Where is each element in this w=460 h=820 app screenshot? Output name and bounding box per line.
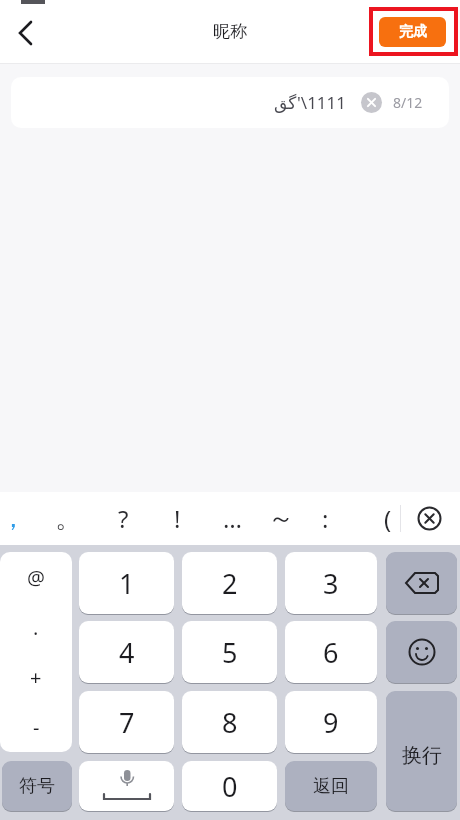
staticText: 3 (323, 565, 339, 602)
button[interactable]: 。 (50, 492, 86, 545)
button[interactable]: 3 (285, 552, 377, 614)
staticText: ? (118, 502, 129, 535)
staticText: 7 (119, 704, 135, 741)
button[interactable]: 符号 (2, 761, 72, 811)
staticText: 完成 (399, 23, 427, 41)
button[interactable] (386, 552, 457, 614)
staticText: 换行 (402, 743, 442, 768)
staticText: 5 (222, 634, 238, 671)
staticText: 8 (222, 704, 238, 741)
staticText: ! (174, 502, 181, 535)
button[interactable]: ! (159, 492, 195, 545)
button[interactable]: + (0, 652, 72, 702)
staticText: 4 (119, 634, 135, 671)
button[interactable] (415, 504, 444, 533)
staticText: 昵称 (213, 21, 247, 42)
button[interactable] (14, 20, 38, 46)
button[interactable]: 返回 (285, 761, 377, 811)
staticText: 6 (323, 634, 339, 671)
staticText: ( (384, 502, 392, 535)
staticText: 2 (222, 565, 238, 602)
staticText: - (33, 714, 40, 741)
button[interactable] (361, 92, 382, 113)
button[interactable]: - (0, 702, 72, 752)
button[interactable]: 2 (182, 552, 277, 614)
button[interactable] (79, 761, 174, 811)
button[interactable]: 9 (285, 691, 377, 753)
button[interactable]: : (307, 492, 343, 545)
staticText: 9 (323, 704, 339, 741)
button[interactable]: ? (105, 492, 141, 545)
button[interactable]: 5 (182, 621, 277, 683)
button[interactable]: 完成 (379, 17, 446, 47)
staticText: ～ (268, 502, 294, 535)
staticText: + (30, 664, 42, 691)
staticText: 返回 (313, 775, 349, 798)
staticText: گق (274, 93, 297, 113)
button[interactable] (386, 621, 457, 683)
staticText: '\1111 (297, 91, 347, 114)
staticText: 符号 (19, 775, 55, 798)
staticText: … (223, 502, 242, 535)
staticText: 。 (55, 502, 81, 535)
button[interactable]: 0 (182, 761, 277, 811)
button[interactable]: 4 (79, 621, 174, 683)
staticText: . (33, 614, 39, 641)
button[interactable]: ， (0, 492, 31, 545)
button[interactable]: گق (11, 77, 449, 128)
button[interactable]: 8 (182, 691, 277, 753)
button[interactable]: 6 (285, 621, 377, 683)
staticText: : (322, 502, 329, 535)
staticText: 1 (119, 565, 135, 602)
button[interactable]: 1 (79, 552, 174, 614)
button[interactable]: ( (370, 492, 406, 545)
staticText: ， (0, 502, 26, 535)
staticText: 8/12 (393, 93, 423, 112)
button[interactable]: . (0, 602, 72, 652)
staticText: 0 (222, 768, 238, 805)
button[interactable]: 换行 (386, 691, 457, 811)
button[interactable]: ～ (263, 492, 299, 545)
button[interactable]: @ (0, 552, 72, 602)
button[interactable]: 7 (79, 691, 174, 753)
staticText: @ (27, 564, 45, 591)
button[interactable]: … (214, 492, 250, 545)
